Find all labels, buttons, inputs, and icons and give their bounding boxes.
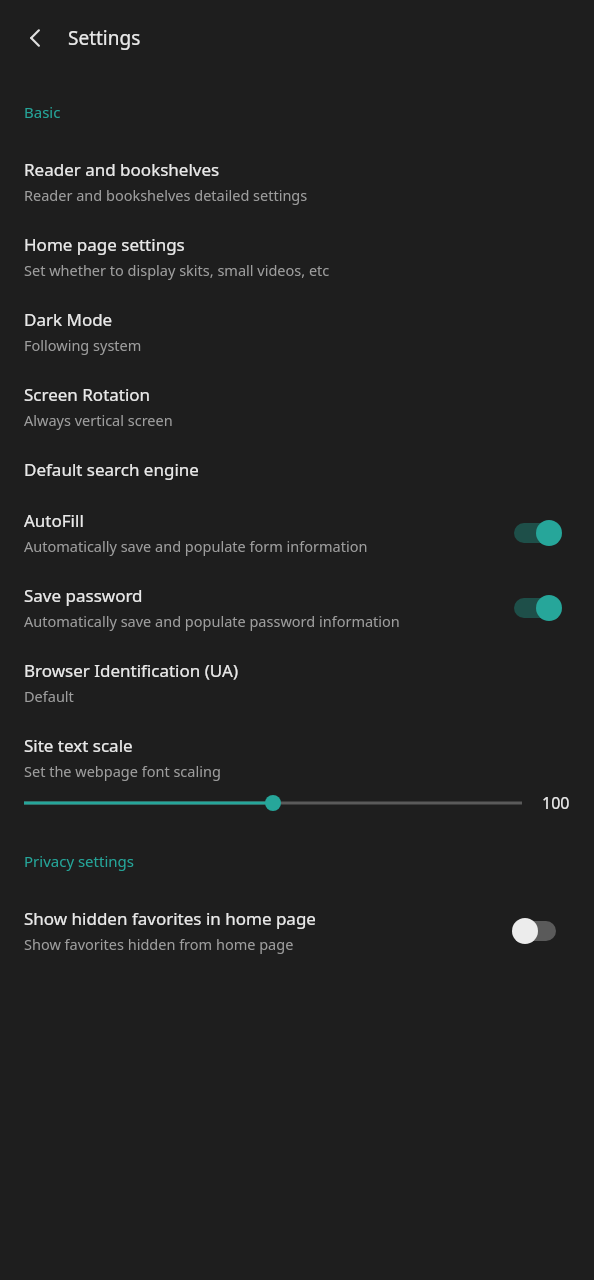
button[interactable]: Toggle <box>514 591 570 625</box>
staticText: Browser Identification (UA) <box>24 659 239 682</box>
button[interactable]: Default search engine <box>0 444 594 495</box>
button[interactable]: Back <box>12 14 60 62</box>
staticText: Default search engine <box>24 458 199 481</box>
staticText: Show favorites hidden from home page <box>24 934 294 954</box>
button[interactable]: Save password <box>0 570 594 645</box>
staticText: Dark Mode <box>24 308 113 331</box>
staticText: Always vertical screen <box>24 410 173 430</box>
staticText: Automatically save and populate password… <box>24 611 400 631</box>
staticText: Set the webpage font scaling <box>24 761 221 781</box>
staticText: AutoFill <box>24 509 84 532</box>
staticText: Home page settings <box>24 233 185 256</box>
staticText: Privacy settings <box>24 851 134 871</box>
staticText: Show hidden favorites in home page <box>24 907 316 930</box>
staticText: Default <box>24 686 74 706</box>
button[interactable]: Show hidden favorites in home page <box>0 893 594 968</box>
staticText: Site text scale <box>24 734 133 757</box>
button[interactable]: Dark Mode <box>0 294 594 369</box>
staticText: Reader and bookshelves <box>24 158 220 181</box>
button[interactable]: Toggle <box>514 914 570 948</box>
staticText: Basic <box>24 102 61 122</box>
staticText: Automatically save and populate form inf… <box>24 536 368 556</box>
button[interactable]: Reader and bookshelves <box>0 144 594 219</box>
button[interactable]: Browser Identification (UA) <box>0 645 594 720</box>
staticText: Set whether to display skits, small vide… <box>24 260 330 280</box>
staticText: 100 <box>542 792 570 814</box>
staticText: Save password <box>24 584 143 607</box>
staticText: Following system <box>24 335 142 355</box>
button[interactable]: AutoFill <box>0 495 594 570</box>
button[interactable]: Home page settings <box>0 219 594 294</box>
button[interactable]: Toggle <box>514 516 570 550</box>
staticText: Screen Rotation <box>24 383 151 406</box>
staticText: Reader and bookshelves detailed settings <box>24 185 308 205</box>
staticText: Settings <box>68 25 141 51</box>
button[interactable]: Screen Rotation <box>0 369 594 444</box>
button[interactable] <box>24 791 522 815</box>
